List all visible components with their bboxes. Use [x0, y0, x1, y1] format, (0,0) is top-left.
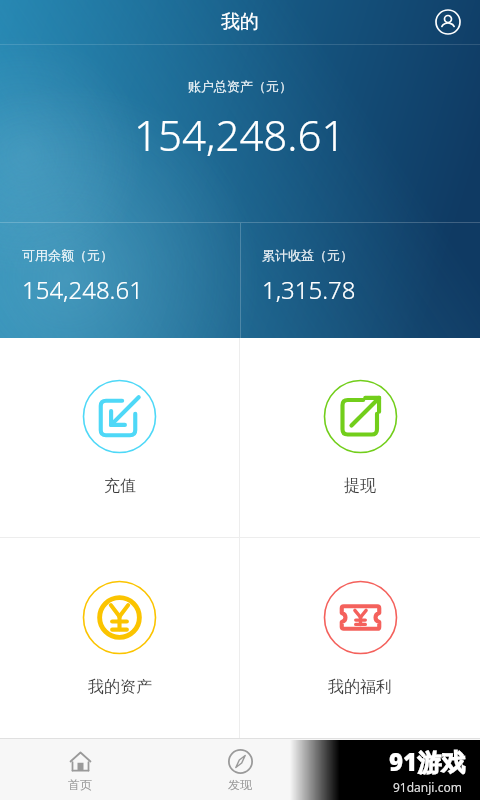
staticText: 我的: [221, 10, 259, 34]
staticText: 154,248.61: [22, 273, 143, 306]
staticText: 我的福利: [328, 677, 392, 697]
staticText: 账户总资产（元）: [188, 78, 292, 94]
button[interactable]: 充值: [0, 338, 239, 537]
button[interactable]: 我的福利: [240, 538, 480, 738]
button[interactable]: 可用余额（元）: [0, 223, 240, 306]
staticText: 发现: [228, 777, 252, 792]
button[interactable]: Profile: [426, 0, 470, 44]
staticText: 充值: [104, 476, 136, 496]
staticText: 我的资产: [88, 677, 152, 697]
staticText: 154,248.61: [134, 106, 346, 163]
staticText: 提现: [344, 476, 376, 496]
staticText: 累计收益（元）: [262, 247, 353, 263]
staticText: 可用余额（元）: [22, 247, 113, 263]
button[interactable]: 发现: [160, 739, 320, 800]
staticText: 首页: [68, 777, 92, 792]
staticText: 91游戏: [389, 745, 466, 778]
staticText: 1,315.78: [262, 273, 356, 306]
button[interactable]: 提现: [240, 338, 480, 537]
button[interactable]: 我的资产: [0, 538, 239, 738]
button[interactable]: 累计收益（元）: [240, 223, 480, 306]
button[interactable]: 首页: [0, 739, 160, 800]
staticText: 91danji.com: [393, 779, 462, 795]
